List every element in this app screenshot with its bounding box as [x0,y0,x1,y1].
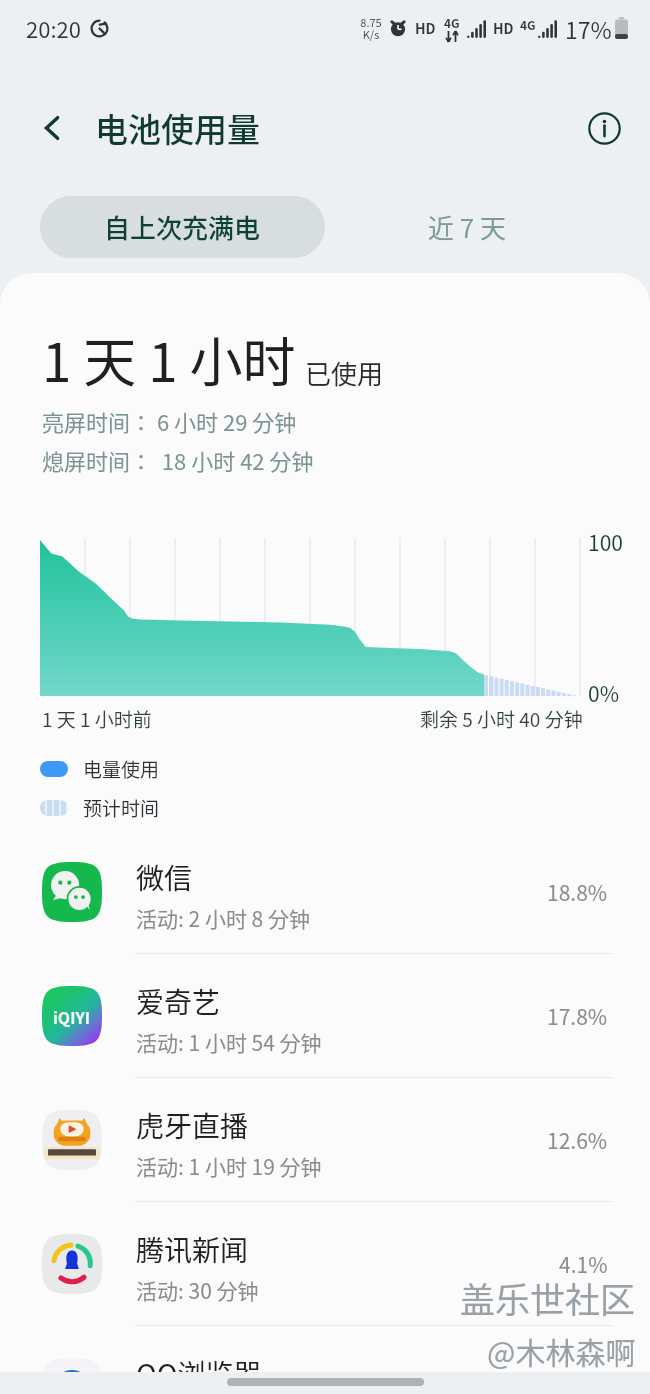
staticText: HD [493,18,514,38]
staticText: 已使用 [305,354,384,392]
staticText: iQIYI [53,1005,91,1028]
staticText: 18.8% [547,877,608,907]
button[interactable]: QQ浏览器 [0,1326,650,1394]
staticText: 盖乐世社区 [460,1272,636,1323]
button[interactable]: 虎牙直播 [0,1078,650,1201]
button[interactable]: iQIYI [0,954,650,1077]
staticText: 亮屏时间： 6 小时 29 分钟 [42,405,297,437]
staticText: 8.75 K/s [360,14,382,42]
staticText: @木林森啊 [487,1329,636,1372]
staticText: 腾讯新闻 [136,1229,249,1270]
staticText: 预计时间 [83,794,160,822]
staticText: 1 天 1 小时前 [42,705,152,733]
staticText: 电量使用 [83,755,160,783]
staticText: 0% [588,678,619,708]
button[interactable]: 近 7 天 [325,196,610,258]
staticText: 微信 [136,857,193,898]
staticText: 爱奇艺 [136,981,221,1022]
staticText: 自上次充满电 [104,208,261,246]
staticText: 4G [444,14,460,31]
staticText: 近 7 天 [428,208,507,246]
staticText: 虎牙直播 [136,1105,249,1146]
button[interactable]: Information [580,104,628,152]
staticText: 17.8% [547,1001,608,1031]
staticText: 100 [588,527,623,557]
staticText: HD [415,18,436,38]
staticText: 4.1% [559,1249,608,1279]
staticText: 活动: 2 小时 8 分钟 [136,903,310,933]
staticText: 活动: 1 小时 54 分钟 [136,1027,322,1057]
button[interactable]: 自上次充满电 [40,196,325,258]
staticText: 熄屏时间： 18 小时 42 分钟 [42,444,314,476]
staticText: 电池使用量 [95,104,260,152]
staticText: 活动: 30 分钟 [136,1275,259,1305]
staticText: 4G [520,16,536,33]
staticText: QQ浏览器 [136,1353,262,1394]
staticText: 17% [565,12,612,45]
button[interactable]: Back [28,104,76,152]
staticText: 12.6% [547,1125,608,1155]
button[interactable]: 腾讯新闻 [0,1202,650,1325]
button[interactable]: 微信 [0,830,650,953]
staticText: 20:20 [26,12,81,44]
staticText: 1 天 1 小时 [42,321,296,398]
staticText: 剩余 5 小时 40 分钟 [420,705,583,733]
staticText: 活动: 1 小时 19 分钟 [136,1151,322,1181]
